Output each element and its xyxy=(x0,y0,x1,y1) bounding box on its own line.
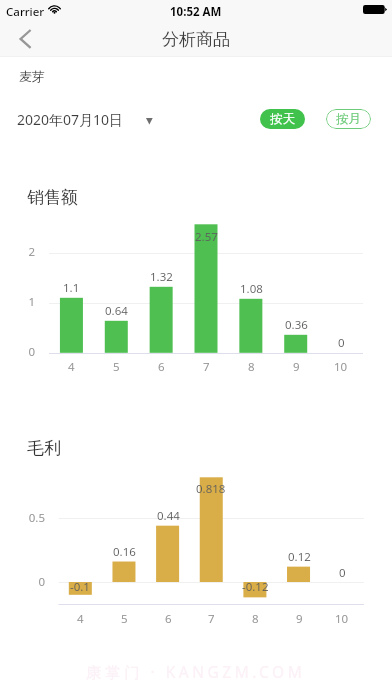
staticText: 1.1 xyxy=(63,280,80,296)
staticText: 5 xyxy=(121,611,128,627)
staticText: 10:52 AM xyxy=(170,4,222,20)
staticText: 2 xyxy=(28,244,35,260)
button[interactable]: 按月 xyxy=(326,109,371,129)
staticText: 康掌门 · KANGZM.COM xyxy=(86,661,306,682)
staticText: 0 xyxy=(28,344,35,360)
button[interactable]: 按天 xyxy=(260,109,305,129)
staticText: 4 xyxy=(77,611,84,627)
staticText: 按天 xyxy=(270,111,295,127)
staticText: 6 xyxy=(165,611,172,627)
staticText: 0.12 xyxy=(288,549,311,565)
staticText: 分析商品 xyxy=(162,29,230,50)
staticText: -0.1 xyxy=(70,579,90,595)
button[interactable]: Back xyxy=(6,24,38,56)
staticText: 0.818 xyxy=(196,481,226,497)
staticText: -0.12 xyxy=(242,579,269,595)
staticText: 1 xyxy=(28,294,35,310)
staticText: 8 xyxy=(252,611,259,627)
staticText: 销售额 xyxy=(27,187,78,208)
staticText: 按月 xyxy=(336,111,361,127)
staticText: 10 xyxy=(335,611,349,627)
staticText: 1.08 xyxy=(240,281,263,297)
staticText: 2020年07月10日 xyxy=(17,110,124,129)
staticText: 麦芽 xyxy=(19,68,45,84)
staticText: 0.44 xyxy=(157,508,180,524)
staticText: 1.32 xyxy=(150,269,173,285)
staticText: 0.16 xyxy=(113,544,136,560)
staticText: 0 xyxy=(338,335,345,351)
staticText: 毛利 xyxy=(27,438,61,459)
staticText: 2.57 xyxy=(195,229,218,245)
button[interactable]: 2020年07月10日 xyxy=(17,110,153,129)
staticText: 0 xyxy=(38,574,45,590)
staticText: Carrier xyxy=(6,4,45,20)
staticText: 0.64 xyxy=(105,303,128,319)
staticText: 10 xyxy=(334,359,348,375)
staticText: 0.5 xyxy=(28,510,45,526)
staticText: 6 xyxy=(158,359,165,375)
staticText: 5 xyxy=(113,359,120,375)
staticText: 7 xyxy=(203,359,210,375)
staticText: 4 xyxy=(68,359,75,375)
staticText: 9 xyxy=(293,359,300,375)
staticText: 8 xyxy=(248,359,255,375)
staticText: 0.36 xyxy=(285,317,308,333)
staticText: 0 xyxy=(339,565,346,581)
staticText: 7 xyxy=(208,611,215,627)
staticText: 9 xyxy=(296,611,303,627)
